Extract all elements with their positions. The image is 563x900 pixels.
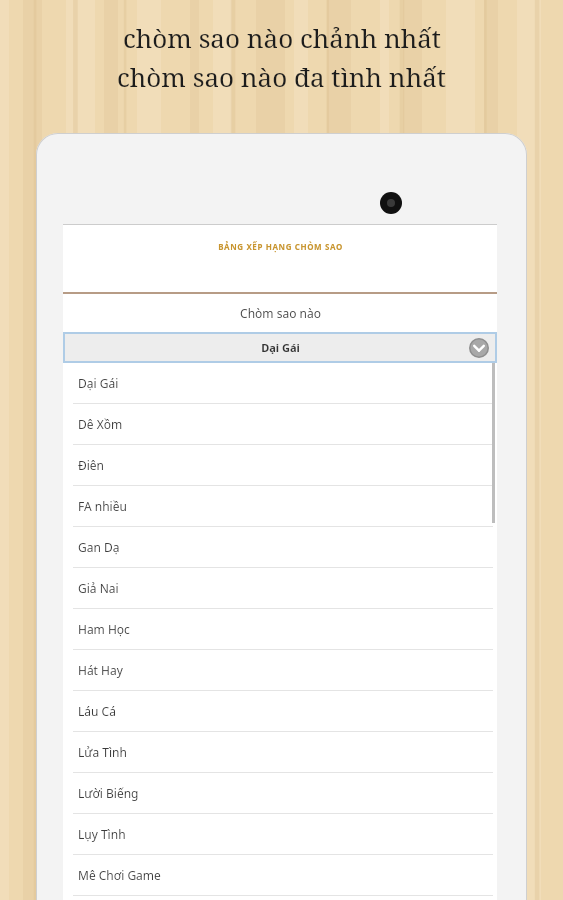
- button[interactable]: Ham Học: [63, 609, 497, 649]
- button[interactable]: Mê Chơi Game: [63, 855, 497, 895]
- button[interactable]: Dê Xồm: [63, 404, 497, 444]
- button[interactable]: Open dropdown: [469, 338, 489, 358]
- button[interactable]: Giả Nai: [63, 568, 497, 608]
- staticText: Chòm sao nào: [240, 305, 321, 321]
- staticText: Điên: [78, 457, 105, 473]
- staticText: Dại Gái: [78, 375, 119, 391]
- button[interactable]: Lười Biếng: [63, 773, 497, 813]
- staticText: Láu Cá: [78, 703, 116, 719]
- button[interactable]: Dại Gái: [63, 363, 497, 403]
- staticText: chòm sao nào chảnh nhất: [123, 20, 441, 55]
- button[interactable]: Láu Cá: [63, 691, 497, 731]
- button[interactable]: Điên: [63, 445, 497, 485]
- staticText: Ham Học: [78, 621, 130, 637]
- staticText: Lửa Tình: [78, 744, 127, 760]
- staticText: FA nhiều: [78, 498, 127, 514]
- staticText: Giả Nai: [78, 580, 119, 596]
- staticText: Gan Dạ: [78, 539, 120, 555]
- button[interactable]: Dại Gái: [63, 332, 497, 363]
- button[interactable]: Gan Dạ: [63, 527, 497, 567]
- staticText: BẢNG XẾP HẠNG CHÒM SAO: [218, 241, 343, 252]
- staticText: Hát Hay: [78, 662, 123, 678]
- button[interactable]: Lửa Tình: [63, 732, 497, 772]
- staticText: chòm sao nào đa tình nhất: [117, 59, 446, 94]
- staticText: Dại Gái: [261, 340, 300, 355]
- button[interactable]: Hát Hay: [63, 650, 497, 690]
- button[interactable]: FA nhiều: [63, 486, 497, 526]
- staticText: Lụy Tình: [78, 826, 126, 842]
- staticText: Dê Xồm: [78, 416, 123, 432]
- button[interactable]: Lụy Tình: [63, 814, 497, 854]
- staticText: Lười Biếng: [78, 785, 139, 801]
- staticText: Mê Chơi Game: [78, 867, 161, 883]
